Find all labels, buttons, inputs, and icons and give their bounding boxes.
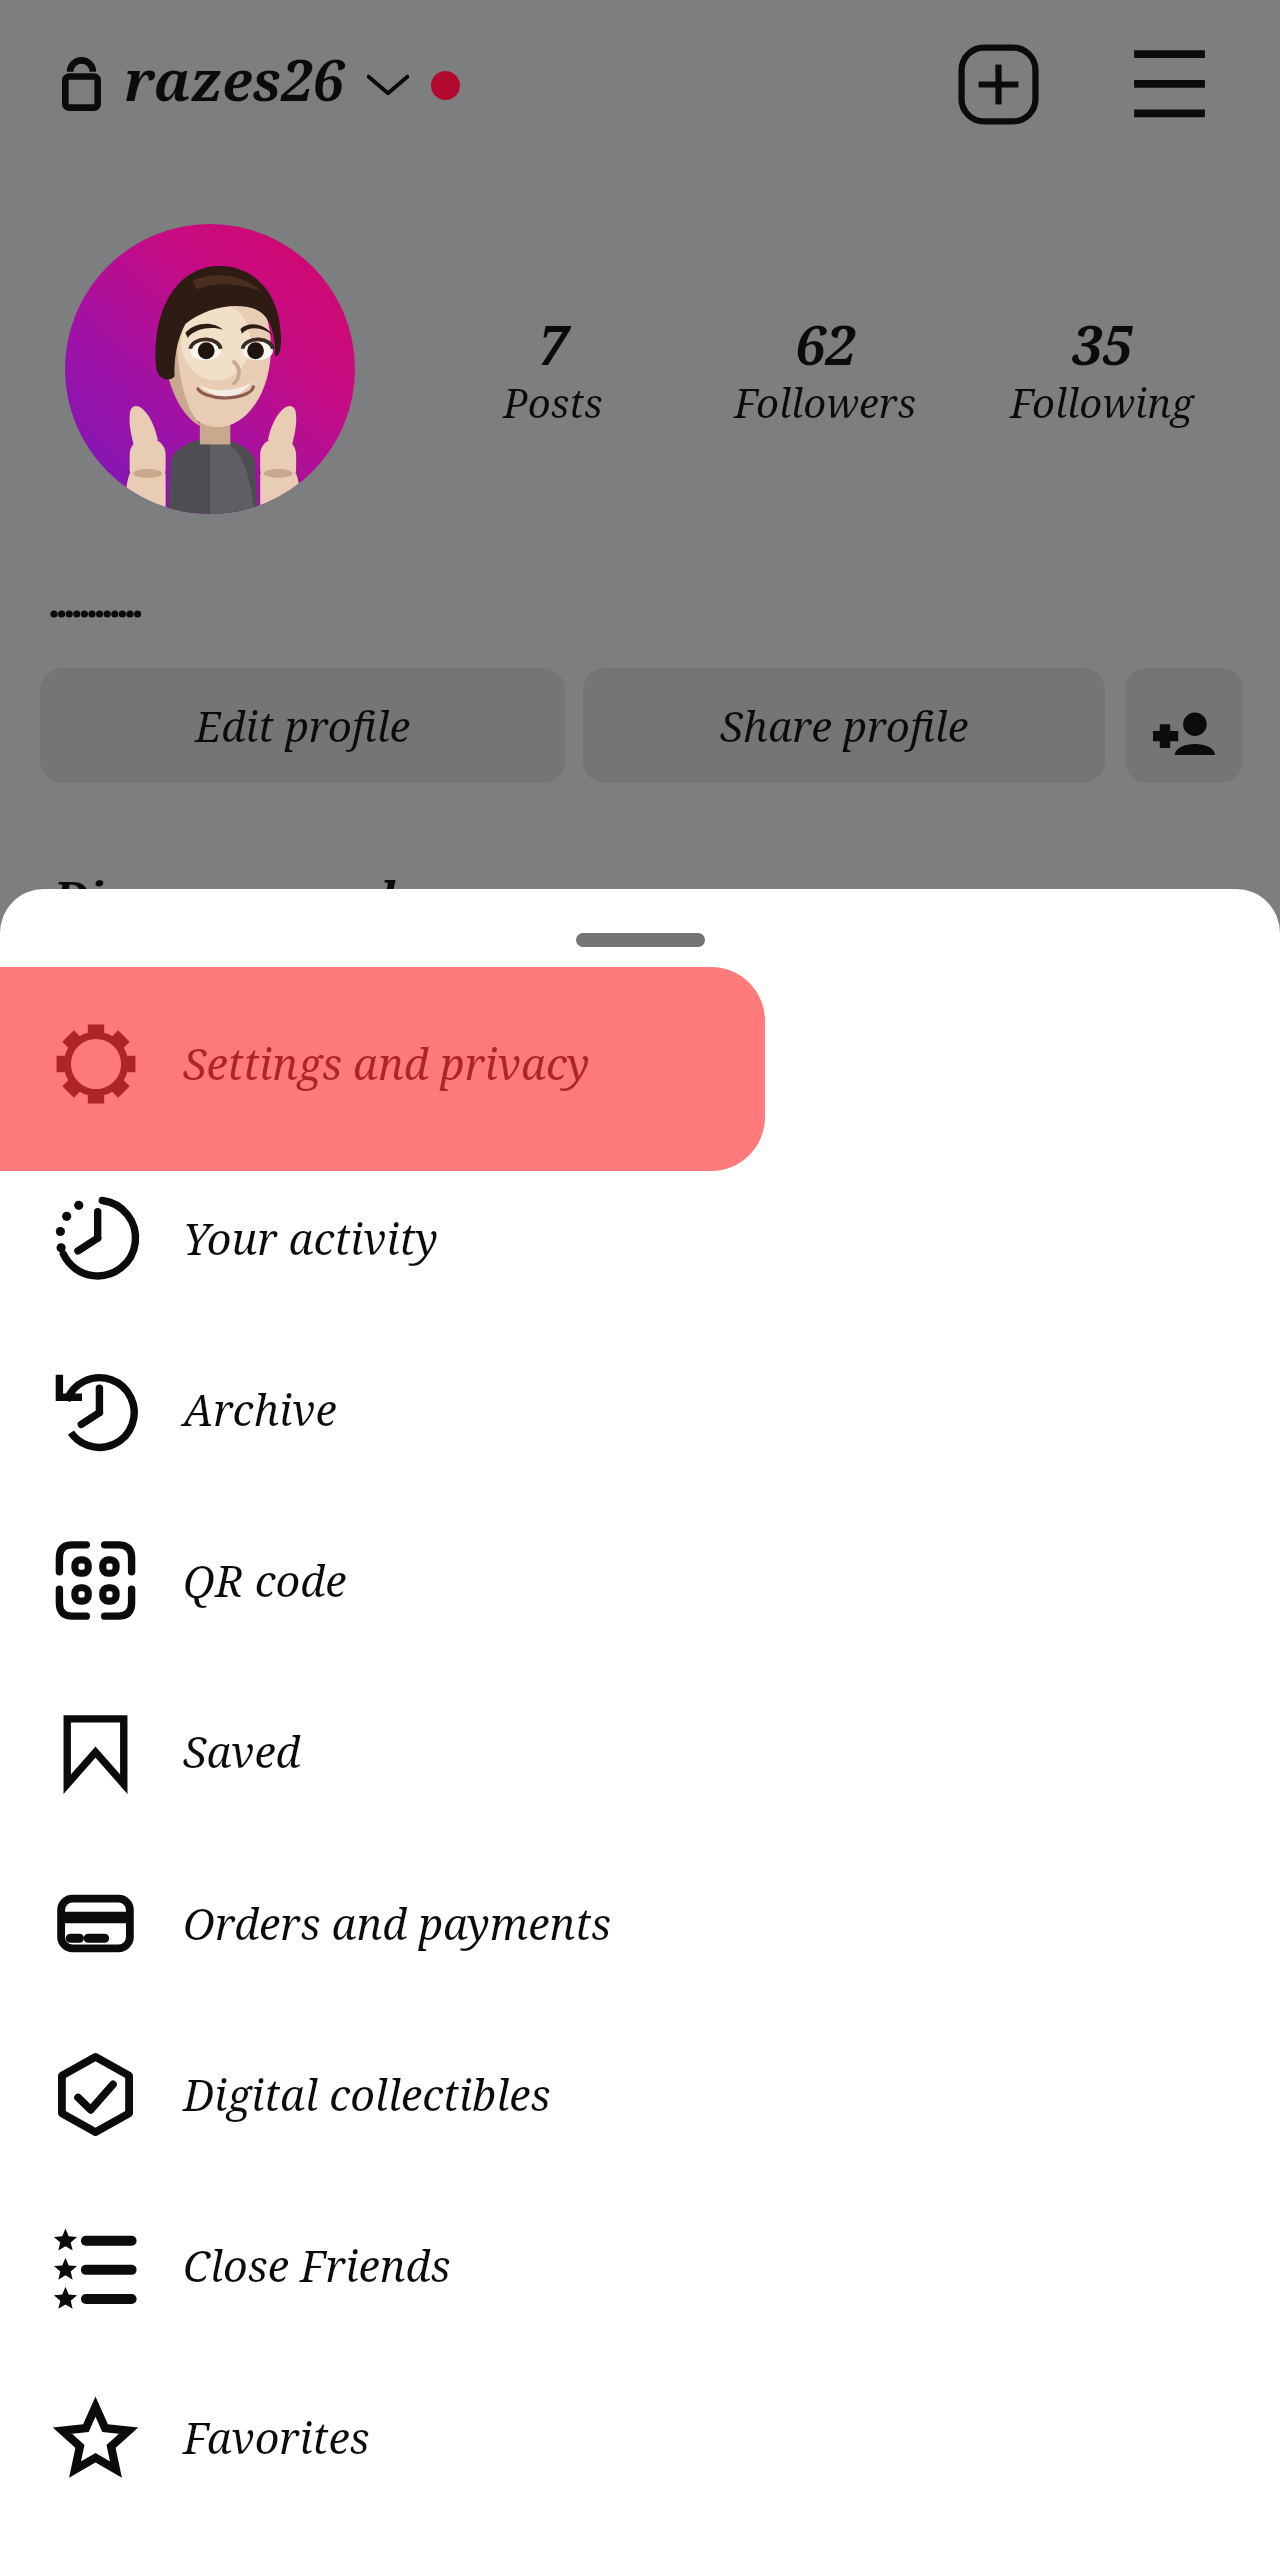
- button[interactable]: Profile photo: [65, 224, 355, 514]
- staticText: 62: [795, 307, 856, 381]
- button[interactable]: Edit profile: [40, 668, 565, 783]
- staticText: Digital collectibles: [183, 2065, 551, 2124]
- staticText: Close Friends: [183, 2236, 451, 2295]
- staticText: Edit profile: [195, 697, 411, 754]
- button[interactable]: Settings and privacy: [0, 967, 765, 1171]
- staticText: Favorites: [183, 2408, 370, 2467]
- button[interactable]: Menu: [1131, 43, 1208, 120]
- button[interactable]: Share profile: [583, 668, 1105, 783]
- staticText: Share profile: [720, 697, 969, 754]
- button[interactable]: QR code: [0, 1495, 1280, 1666]
- staticText: 35: [1072, 307, 1133, 381]
- staticText: QR code: [183, 1551, 347, 1610]
- staticText: Orders and payments: [183, 1894, 612, 1953]
- button[interactable]: Favorites: [0, 2352, 1280, 2523]
- button[interactable]: New post: [957, 43, 1040, 126]
- staticText: Archive: [183, 1380, 337, 1439]
- staticText: razes26: [124, 41, 344, 117]
- staticText: Followers: [734, 375, 916, 429]
- staticText: Following: [1010, 375, 1194, 429]
- button[interactable]: 35: [952, 300, 1252, 440]
- button[interactable]: razes26: [50, 30, 475, 135]
- button[interactable]: 7: [403, 300, 703, 440]
- staticText: Your activity: [183, 1209, 439, 1268]
- button[interactable]: Archive: [0, 1324, 1280, 1495]
- staticText: Posts: [503, 375, 603, 429]
- staticText: Settings and privacy: [183, 1034, 590, 1093]
- button[interactable]: Digital collectibles: [0, 2009, 1280, 2180]
- staticText: Discover people: [53, 866, 422, 929]
- button[interactable]: Saved: [0, 1666, 1280, 1837]
- button[interactable]: Close Friends: [0, 2180, 1280, 2351]
- button[interactable]: 62: [675, 300, 975, 440]
- staticText: Saved: [183, 1722, 301, 1781]
- button[interactable]: Orders and payments: [0, 1838, 1280, 2009]
- button[interactable]: Your activity: [0, 1153, 1280, 1324]
- staticText: 7: [538, 307, 569, 381]
- button[interactable]: Discover people: [1125, 668, 1243, 783]
